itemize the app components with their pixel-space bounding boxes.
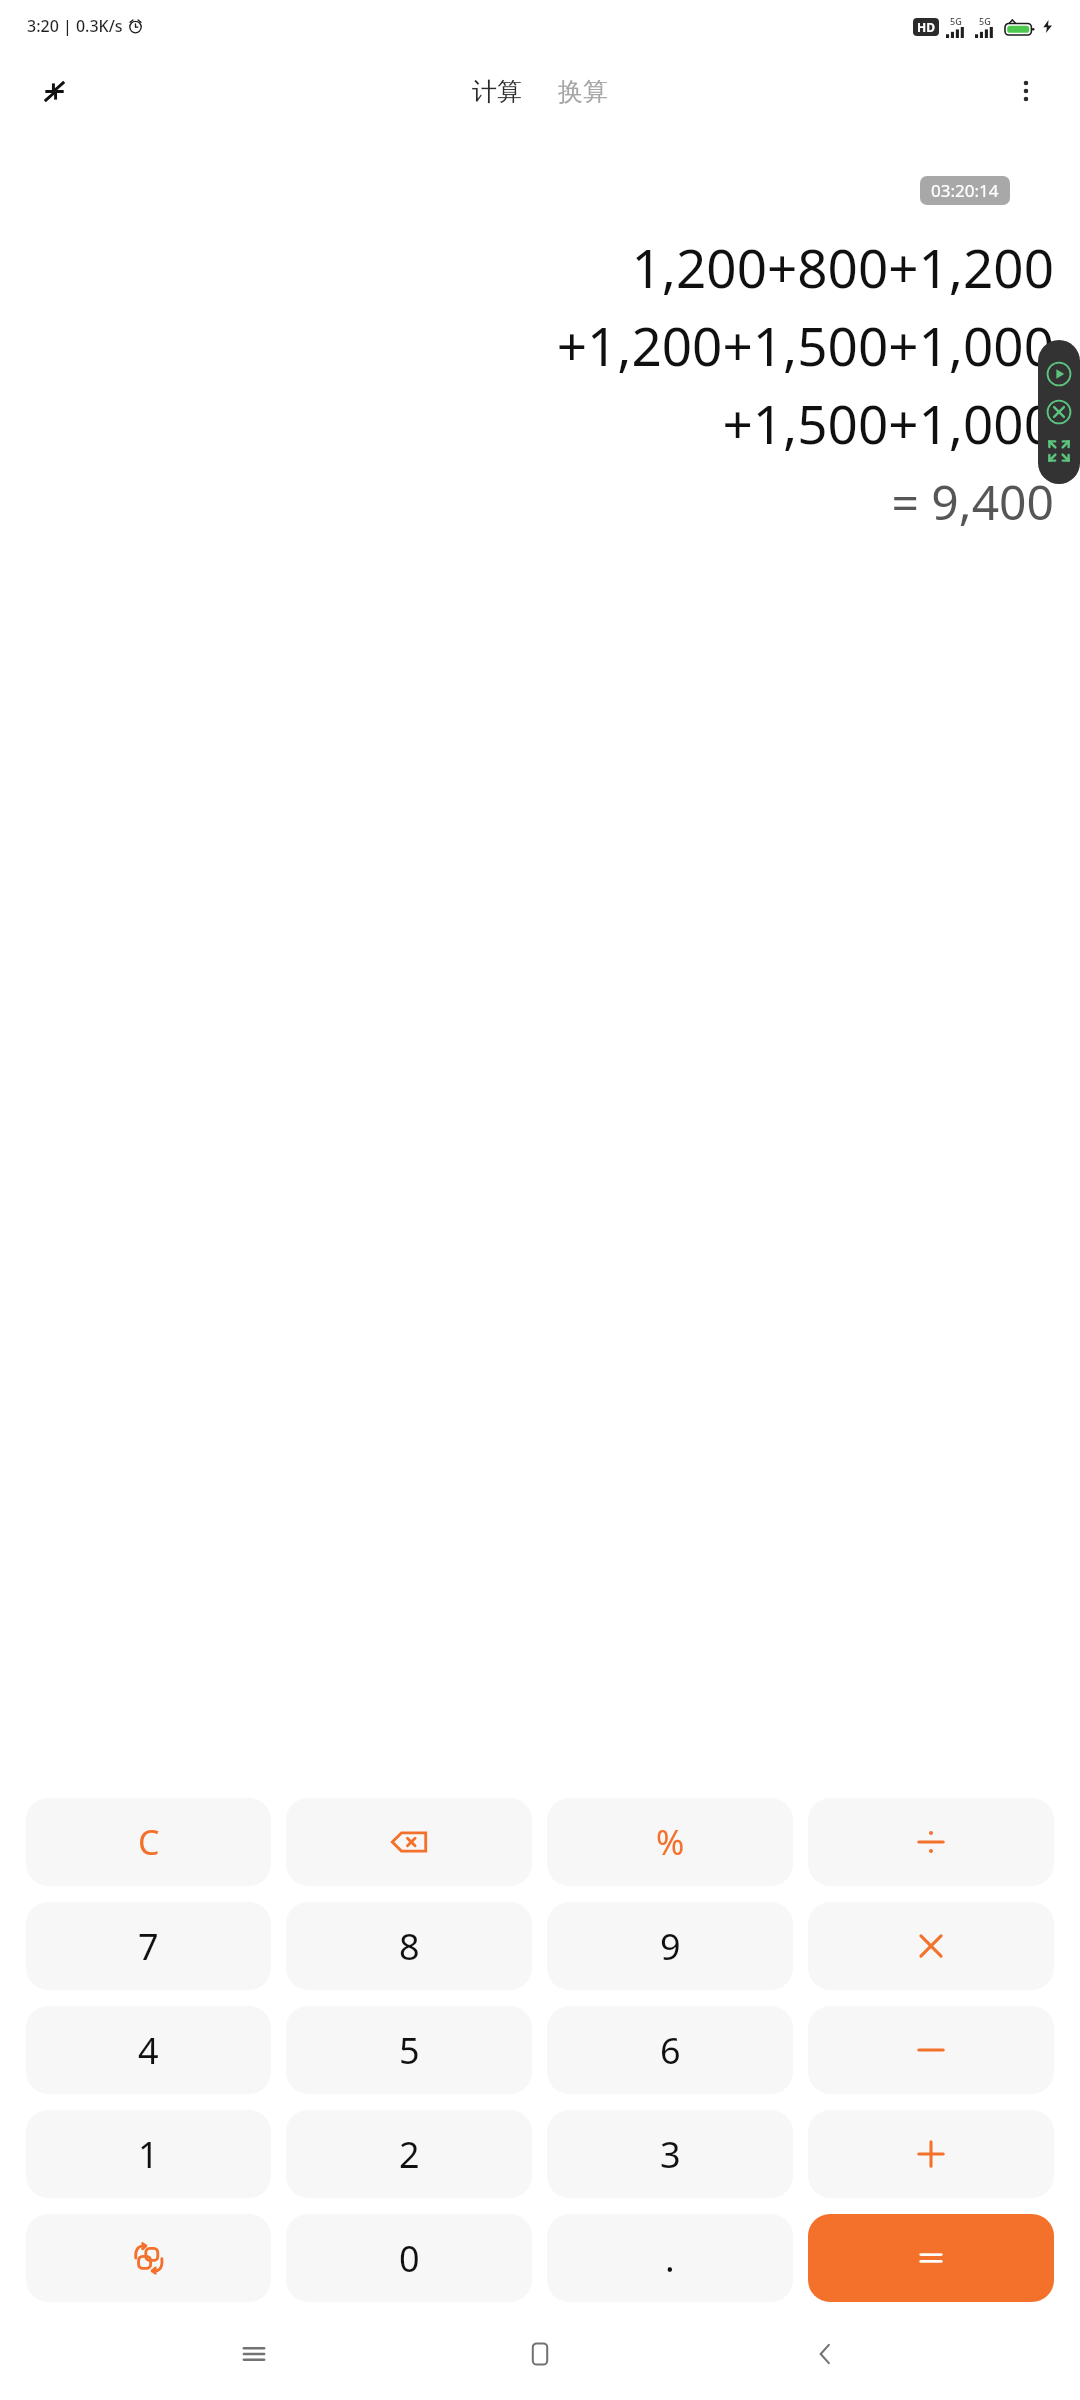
button[interactable]: 0 xyxy=(286,2214,532,2302)
button[interactable]: C xyxy=(26,1798,271,1886)
staticText: % xyxy=(656,1819,685,1865)
button[interactable]: 换算 xyxy=(552,70,614,113)
button[interactable]: Minus xyxy=(808,2006,1054,2094)
staticText: . xyxy=(665,2234,675,2283)
button[interactable]: 8 xyxy=(286,1902,532,1990)
staticText: 1,200+800+1,200 xyxy=(631,231,1054,303)
staticText: 换算 xyxy=(558,76,608,107)
staticText: 计算 xyxy=(472,76,522,107)
button[interactable]: Backspace xyxy=(286,1798,532,1886)
staticText: 03:20:14 xyxy=(931,179,999,202)
button[interactable]: 1 xyxy=(26,2110,271,2198)
button[interactable]: 6 xyxy=(547,2006,793,2094)
staticText: 1 xyxy=(138,2130,159,2179)
staticText: 6 xyxy=(660,2026,681,2075)
staticText: +1,500+1,000 xyxy=(722,387,1054,459)
staticText: 9 xyxy=(660,1922,681,1971)
staticText: 5G xyxy=(979,15,991,27)
button[interactable]: Record xyxy=(1044,359,1074,389)
staticText: 3 xyxy=(660,2130,681,2179)
staticText: +1,200+1,500+1,000 xyxy=(556,309,1054,381)
staticText: 3:20 | 0.3K/s xyxy=(27,15,123,37)
staticText: 0 xyxy=(399,2234,420,2283)
button[interactable]: 4 xyxy=(26,2006,271,2094)
button[interactable]: Multiply xyxy=(808,1902,1054,1990)
button[interactable]: Convert xyxy=(26,2214,271,2302)
button[interactable]: 9 xyxy=(547,1902,793,1990)
button[interactable]: % xyxy=(547,1798,793,1886)
staticText: 2 xyxy=(399,2130,420,2179)
staticText: 7 xyxy=(138,1922,159,1971)
button[interactable]: Collapse xyxy=(30,67,78,115)
button[interactable]: Plus xyxy=(808,2110,1054,2198)
button[interactable]: More options xyxy=(1002,67,1050,115)
staticText: = 9,400 xyxy=(891,469,1054,534)
button[interactable]: . xyxy=(547,2214,793,2302)
button[interactable]: 3 xyxy=(547,2110,793,2198)
staticText: 4 xyxy=(138,2026,159,2075)
button[interactable]: Recents xyxy=(222,2324,286,2384)
button[interactable]: Divide xyxy=(808,1798,1054,1886)
button[interactable]: Equals xyxy=(808,2214,1054,2302)
button[interactable]: 03:20:14 xyxy=(920,176,1010,205)
button[interactable]: Expand xyxy=(1044,436,1074,466)
staticText: C xyxy=(138,1819,160,1865)
staticText: HD xyxy=(917,19,935,35)
staticText: 5 xyxy=(399,2026,420,2075)
button[interactable]: 计算 xyxy=(466,70,528,113)
button[interactable]: 2 xyxy=(286,2110,532,2198)
button[interactable]: Back xyxy=(794,2324,858,2384)
staticText: 5G xyxy=(950,15,962,27)
button[interactable]: 7 xyxy=(26,1902,271,1990)
button[interactable]: Close xyxy=(1044,397,1074,427)
button[interactable]: Home xyxy=(508,2324,572,2384)
button[interactable]: 5 xyxy=(286,2006,532,2094)
staticText: 8 xyxy=(399,1922,420,1971)
